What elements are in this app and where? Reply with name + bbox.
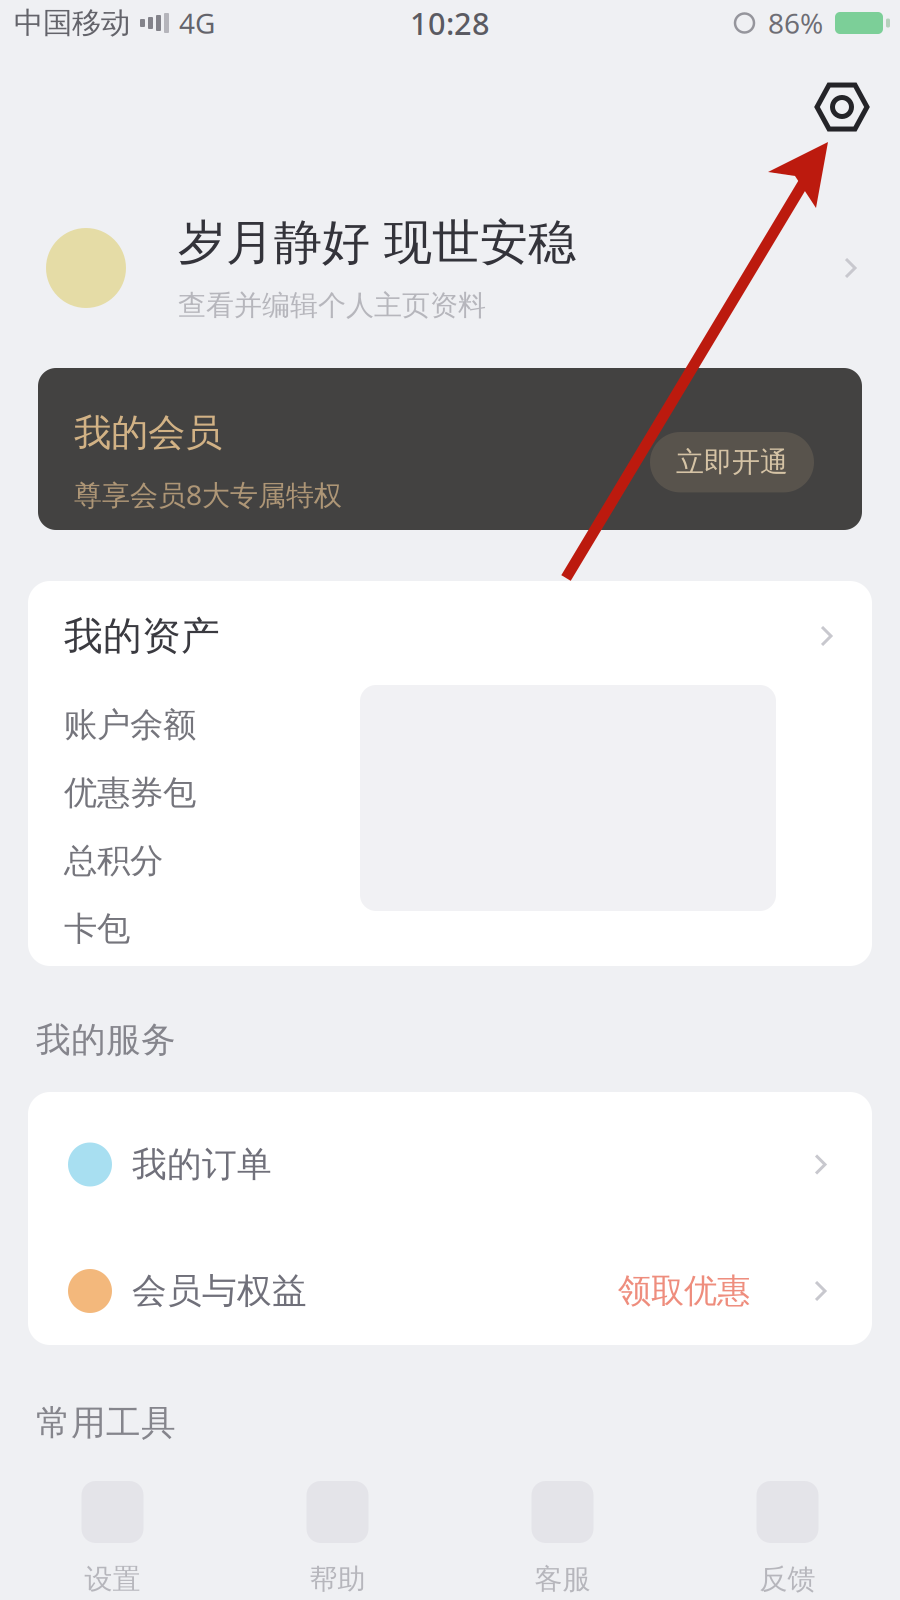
button[interactable]: 设置 xyxy=(0,1465,225,1600)
staticText: 客服 xyxy=(534,1562,590,1596)
staticText: 岁月静好 现世安稳 xyxy=(178,213,576,272)
staticText: 总积分 xyxy=(64,840,163,881)
staticText: 帮助 xyxy=(309,1562,365,1596)
staticText: 我的订单 xyxy=(132,1143,272,1186)
staticText: 中国移动 xyxy=(14,5,130,41)
staticText: 我的资产 xyxy=(64,612,220,660)
button[interactable]: 反馈 xyxy=(675,1465,900,1600)
staticText: 10:28 xyxy=(410,3,490,43)
staticText: 卡包 xyxy=(64,908,130,949)
button[interactable]: 设置 xyxy=(810,75,874,139)
staticText: 尊享会员8大专属特权 xyxy=(74,476,342,513)
staticText: 会员与权益 xyxy=(132,1270,307,1312)
staticText: 领取优惠 xyxy=(618,1270,750,1311)
button[interactable]: 会员与权益 xyxy=(28,1237,872,1345)
button[interactable]: 账户余额 xyxy=(28,691,872,759)
staticText: 反馈 xyxy=(759,1562,815,1596)
button[interactable]: 我的会员 xyxy=(0,368,900,530)
button[interactable]: 岁月静好 现世安稳 xyxy=(0,168,900,368)
staticText: 查看并编辑个人主页资料 xyxy=(178,288,486,323)
button[interactable]: 总积分 xyxy=(28,827,872,895)
button[interactable]: 我的资产 xyxy=(28,581,872,691)
button[interactable]: 优惠券包 xyxy=(28,759,872,827)
staticText: 立即开通 xyxy=(676,445,788,479)
staticText: 常用工具 xyxy=(36,1402,176,1444)
staticText: 优惠券包 xyxy=(64,772,196,813)
staticText: 账户余额 xyxy=(64,704,196,745)
staticText: 86% xyxy=(768,4,823,42)
button[interactable]: 我的订单 xyxy=(28,1092,872,1237)
button[interactable]: 帮助 xyxy=(225,1465,450,1600)
staticText: 设置 xyxy=(84,1562,140,1596)
button[interactable]: 客服 xyxy=(450,1465,675,1600)
button[interactable]: 卡包 xyxy=(28,895,872,963)
staticText: 我的服务 xyxy=(36,1019,176,1061)
staticText: 我的会员 xyxy=(74,410,222,456)
staticText: 4G xyxy=(179,4,215,42)
